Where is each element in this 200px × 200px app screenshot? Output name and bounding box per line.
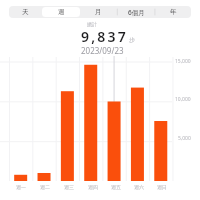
- staticText: 週二: [40, 184, 50, 190]
- button[interactable]: 6個月: [117, 7, 155, 17]
- staticText: 年: [170, 8, 177, 16]
- staticText: 6個月: [128, 8, 145, 17]
- staticText: 週一: [16, 184, 26, 190]
- staticText: 週: [58, 8, 65, 16]
- staticText: 9,837: [81, 27, 128, 46]
- staticText: 週四: [88, 184, 98, 190]
- staticText: 週五: [111, 184, 121, 190]
- button[interactable]: 天: [9, 7, 42, 17]
- staticText: 15,000: [175, 58, 191, 65]
- staticText: 週三: [64, 184, 74, 190]
- button[interactable]: 週: [42, 7, 80, 17]
- staticText: 月: [95, 8, 102, 16]
- staticText: 2023/09/23: [81, 45, 124, 56]
- staticText: 5,000: [178, 135, 191, 142]
- staticText: 週六: [134, 184, 144, 190]
- staticText: 週日: [157, 184, 167, 190]
- staticText: 10,000: [175, 96, 191, 103]
- staticText: 天: [22, 8, 29, 16]
- staticText: 步: [129, 36, 135, 44]
- button[interactable]: 年: [155, 7, 191, 17]
- button[interactable]: 月: [80, 7, 117, 17]
- staticText: 總計: [87, 21, 97, 27]
